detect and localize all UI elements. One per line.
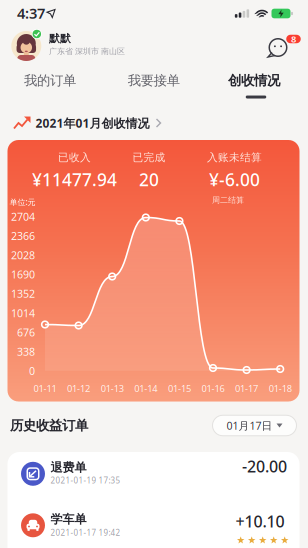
staticText: 单位:元 — [9, 197, 35, 207]
staticText: 2366 — [11, 229, 35, 243]
button[interactable]: 2021年01月创收情况 — [0, 102, 308, 140]
staticText: 01-17 — [235, 382, 258, 395]
staticText: 我的订单 — [24, 72, 76, 89]
staticText: 退费单 — [50, 460, 86, 475]
staticText: 01-18 — [269, 382, 292, 395]
staticText: 2021年01月创收情况 — [35, 115, 149, 131]
staticText: 2028 — [11, 248, 35, 262]
button[interactable]: 默默 — [0, 27, 170, 64]
staticText: 已完成 — [132, 151, 165, 164]
button[interactable]: 我要接单 — [109, 67, 199, 93]
staticText: 8 — [291, 33, 296, 45]
button[interactable]: 消息 — [267, 35, 297, 59]
staticText: 入账未结算 — [207, 151, 262, 164]
staticText: 01-16 — [201, 382, 224, 395]
button[interactable]: 创收情况 — [209, 64, 299, 102]
staticText: 01-11 — [33, 382, 56, 395]
button[interactable]: 01月17日 — [212, 415, 296, 436]
staticText: 2021-01-17 19:42 — [50, 527, 120, 538]
button[interactable]: 学车单 — [7, 500, 299, 548]
staticText: 20 — [139, 168, 159, 191]
staticText: -20.00 — [242, 456, 287, 477]
button[interactable]: 退费单 — [7, 452, 299, 500]
staticText: 已收入 — [58, 151, 91, 164]
staticText: 01月17日 — [226, 418, 272, 433]
button[interactable]: 我的订单 — [5, 67, 95, 93]
staticText: ¥-6.00 — [209, 168, 260, 191]
staticText: 01-14 — [134, 382, 157, 395]
staticText: 学车单 — [50, 512, 86, 527]
staticText: 周二结算 — [212, 195, 244, 205]
staticText: 338 — [17, 344, 35, 359]
staticText: 2704 — [11, 209, 35, 224]
staticText: 我要接单 — [128, 72, 180, 89]
staticText: 01-12 — [67, 382, 90, 395]
staticText: 01-15 — [168, 382, 191, 395]
staticText: ¥11477.94 — [32, 168, 117, 191]
staticText: 0 — [29, 364, 35, 378]
staticText: 4:37 — [17, 3, 45, 23]
staticText: 1352 — [11, 287, 35, 301]
staticText: 默默 — [49, 32, 71, 45]
staticText: 广东省 深圳市 南山区 — [49, 46, 125, 56]
staticText: 01-13 — [101, 382, 124, 395]
staticText: 676 — [17, 325, 35, 339]
staticText: 历史收益订单 — [10, 417, 88, 434]
staticText: 1014 — [11, 306, 35, 320]
staticText: 2021-01-19 17:35 — [50, 475, 120, 486]
staticText: 1690 — [11, 267, 35, 281]
staticText: 创收情况 — [228, 72, 280, 89]
staticText: +10.10 — [235, 511, 284, 532]
